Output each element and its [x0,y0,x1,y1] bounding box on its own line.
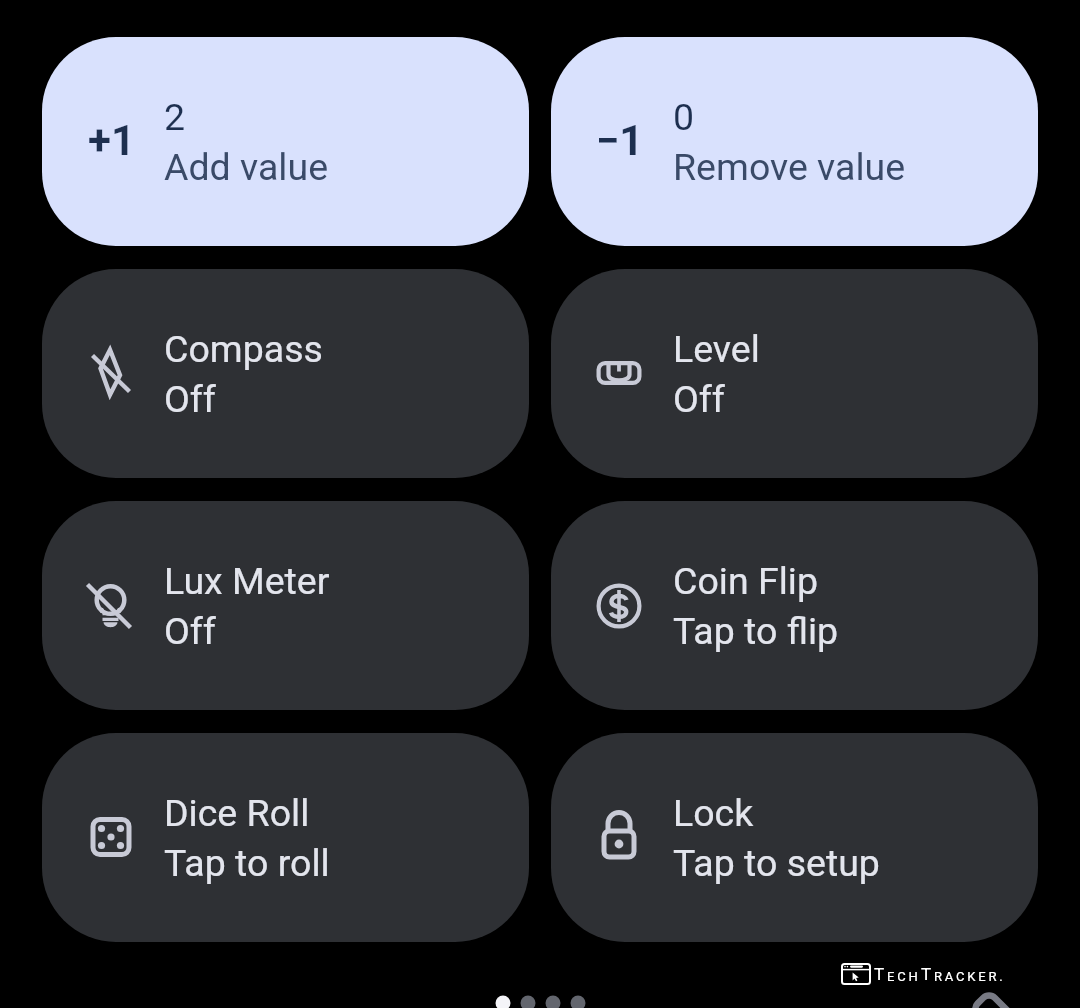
staticText: RACKER. [934,969,1006,984]
other: Dice Roll [80,808,140,868]
staticText: Dice Roll [164,786,310,836]
staticText: Add value [164,140,329,190]
staticText: ECH [887,969,921,984]
staticText: Lux Meter [164,554,330,604]
button[interactable]: −1 [551,37,1038,246]
staticText: Lock [673,786,754,836]
staticText: Off [673,372,725,422]
other: Lock [589,808,649,868]
staticText: T [921,964,934,984]
staticText: Tap to flip [673,604,839,654]
staticText: Tap to setup [673,836,880,886]
button[interactable]: Dice Roll [42,733,529,942]
staticText: Remove value [673,140,906,190]
staticText: 2 [164,90,186,140]
staticText: Tap to roll [164,836,330,886]
button[interactable]: Compass [42,269,529,478]
staticText: Off [164,604,216,654]
button[interactable]: Lux Meter [42,501,529,710]
button[interactable]: Lock [551,733,1038,942]
staticText: +1 [88,116,135,165]
other: Compass [80,344,140,404]
staticText: −1 [596,116,644,165]
other: Coin Flip [589,576,649,636]
staticText: T [874,964,887,984]
staticText: 0 [673,90,695,140]
staticText: Level [673,322,760,372]
button[interactable]: Coin Flip [551,501,1038,710]
other: Level [589,344,649,404]
button[interactable]: Level [551,269,1038,478]
staticText: Compass [164,322,323,372]
button[interactable]: +1 [42,37,529,246]
staticText: Off [164,372,216,422]
staticText: Coin Flip [673,554,818,604]
other: Lux Meter [80,576,140,636]
